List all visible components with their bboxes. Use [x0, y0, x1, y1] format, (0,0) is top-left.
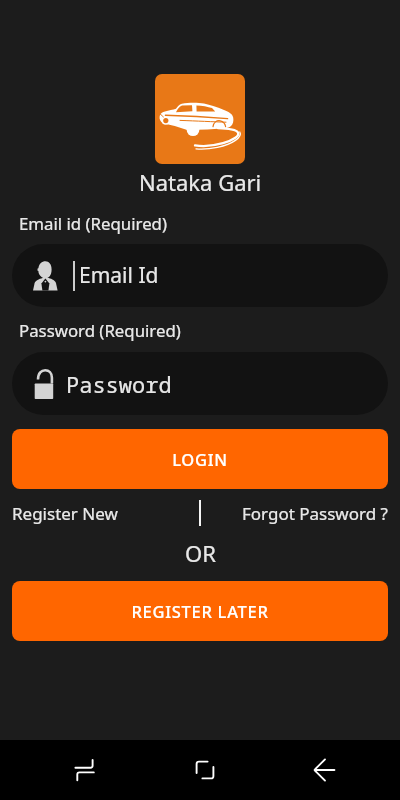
staticText: Email id (Required)	[19, 212, 167, 235]
button[interactable]: Email Id	[12, 244, 388, 307]
staticText: OR	[185, 538, 216, 568]
staticText: Forgot Password ?	[242, 502, 388, 525]
button[interactable]: Forgot Password ?	[242, 502, 388, 525]
button[interactable]: Back	[295, 740, 355, 800]
staticText: Nataka Gari	[139, 167, 262, 197]
button[interactable]: Register New	[12, 499, 118, 527]
staticText: REGISTER LATER	[131, 600, 269, 622]
staticText: LOGIN	[172, 448, 228, 470]
staticText: Password	[66, 369, 172, 399]
button[interactable]: Home	[175, 740, 235, 800]
staticText: Register New	[12, 502, 118, 525]
button[interactable]: LOGIN	[12, 429, 388, 489]
button[interactable]: Recent apps	[55, 740, 115, 800]
button[interactable]: REGISTER LATER	[12, 581, 388, 641]
staticText: Password (Required)	[19, 319, 181, 342]
staticText: Email Id	[79, 261, 159, 290]
button[interactable]: Password	[12, 352, 388, 415]
